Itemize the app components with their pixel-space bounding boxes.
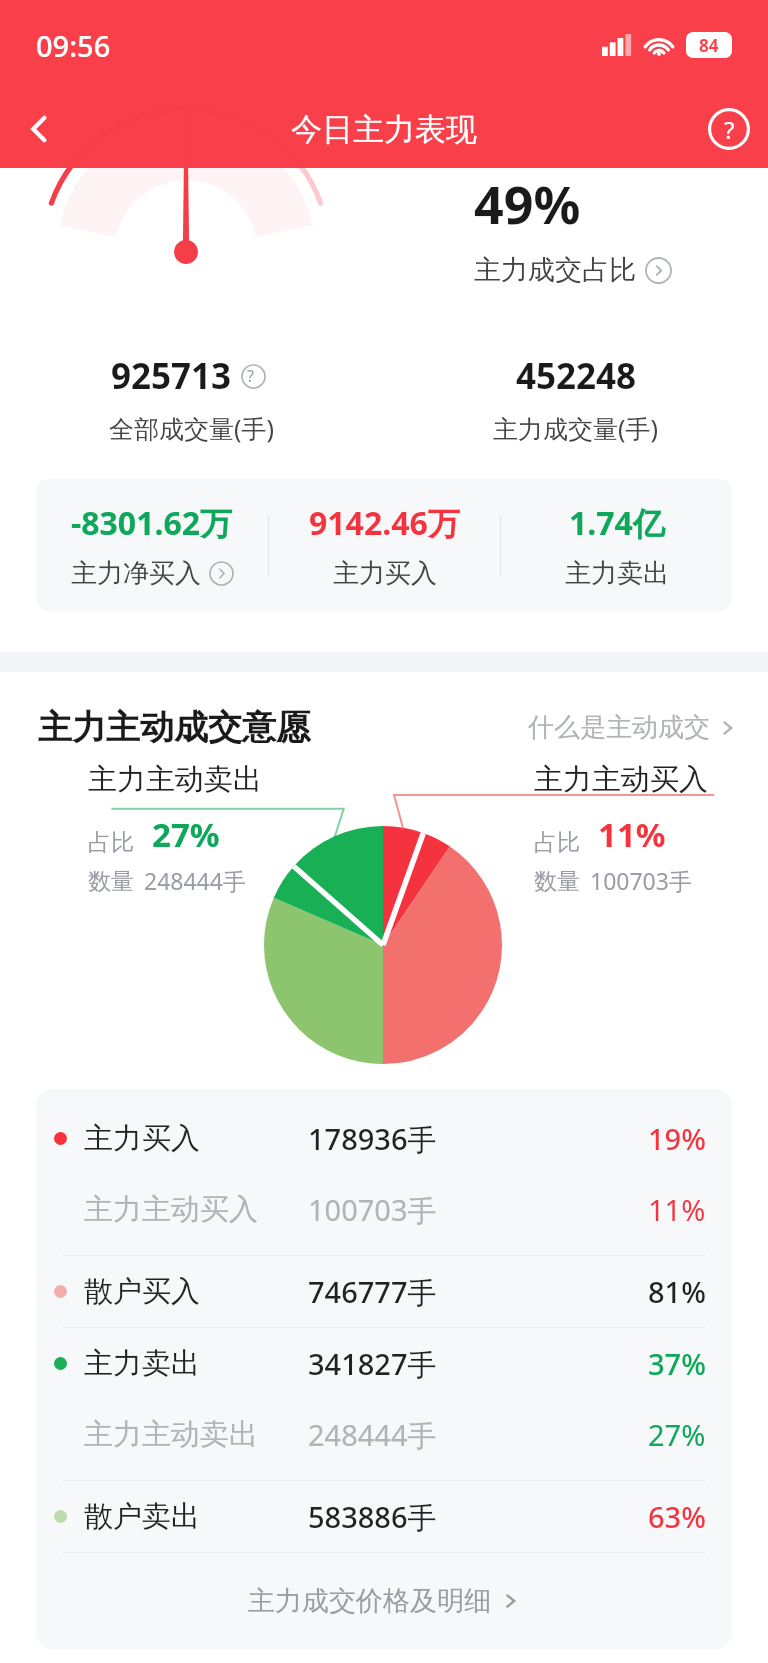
button[interactable]: 1.74亿 (501, 479, 732, 612)
staticText: 925713 (111, 352, 232, 400)
staticText: ? (247, 365, 254, 387)
staticText: 主力主动成交意愿 (38, 706, 310, 749)
button[interactable]: 主力成交价格及明细 (36, 1553, 732, 1649)
staticText: 散户卖出 (84, 1498, 200, 1535)
staticText: 11% (598, 812, 666, 857)
staticText: ? (724, 113, 735, 146)
staticText: 248444手 (144, 865, 246, 896)
staticText: 主力卖出 (84, 1345, 200, 1382)
staticText: 主力卖出 (565, 557, 669, 590)
staticText: 主力买入 (84, 1120, 200, 1157)
staticText: 占比 (88, 828, 134, 857)
button[interactable]: 9142.46万 (269, 479, 500, 612)
button[interactable]: Help (690, 90, 768, 168)
staticText: 11% (648, 1190, 706, 1229)
staticText: 746777手 (308, 1272, 437, 1312)
staticText: 主力成交占比 (474, 253, 636, 287)
button[interactable]: 主力主动买入 (36, 1174, 732, 1245)
staticText: 37% (648, 1344, 706, 1383)
staticText: 主力主动卖出 (84, 1416, 258, 1453)
staticText: 什么是主动成交 (528, 711, 710, 744)
staticText: 341827手 (308, 1344, 437, 1384)
staticText: 主力净买入 (71, 557, 201, 590)
button[interactable]: 主力买入 (36, 1103, 732, 1174)
button[interactable]: -8301.62万 (36, 479, 268, 612)
staticText: 1.74亿 (569, 501, 665, 545)
staticText: 全部成交量(手) (109, 411, 275, 445)
staticText: 9142.46万 (309, 501, 460, 545)
staticText: 主力成交量(手) (493, 411, 659, 445)
button[interactable]: 主力成交占比 (474, 253, 672, 287)
staticText: 数量 (88, 867, 134, 896)
staticText: 81% (648, 1272, 706, 1311)
staticText: 452248 (516, 352, 637, 400)
staticText: 主力主动买入 (534, 761, 708, 798)
staticText: 占比 (534, 828, 580, 857)
staticText: 09:56 (36, 26, 111, 65)
button[interactable]: 散户卖出 (36, 1481, 732, 1552)
staticText: 100703手 (308, 1190, 437, 1230)
button[interactable]: Back (0, 90, 78, 168)
staticText: 583886手 (308, 1497, 437, 1537)
staticText: 主力主动买入 (84, 1191, 258, 1228)
staticText: 主力主动卖出 (88, 761, 262, 798)
button[interactable]: 主力主动卖出 (36, 1399, 732, 1470)
button[interactable]: 散户买入 (36, 1256, 732, 1327)
staticText: 63% (648, 1497, 706, 1536)
button[interactable]: 什么是主动成交 (528, 711, 738, 744)
staticText: 27% (648, 1415, 706, 1454)
staticText: -8301.62万 (71, 501, 233, 545)
staticText: 数量 (534, 867, 580, 896)
staticText: 27% (152, 812, 220, 857)
staticText: 主力买入 (333, 557, 437, 590)
staticText: 主力成交价格及明细 (248, 1584, 491, 1618)
staticText: 19% (648, 1119, 706, 1158)
button[interactable]: 主力卖出 (36, 1328, 732, 1399)
staticText: 178936手 (308, 1119, 437, 1159)
staticText: 今日主力表现 (291, 110, 477, 149)
staticText: 散户买入 (84, 1273, 200, 1310)
staticText: 84 (699, 34, 719, 57)
staticText: 49% (474, 168, 581, 239)
staticText: 100703手 (590, 865, 692, 896)
button[interactable]: 925713 (111, 352, 273, 400)
staticText: 248444手 (308, 1415, 437, 1455)
